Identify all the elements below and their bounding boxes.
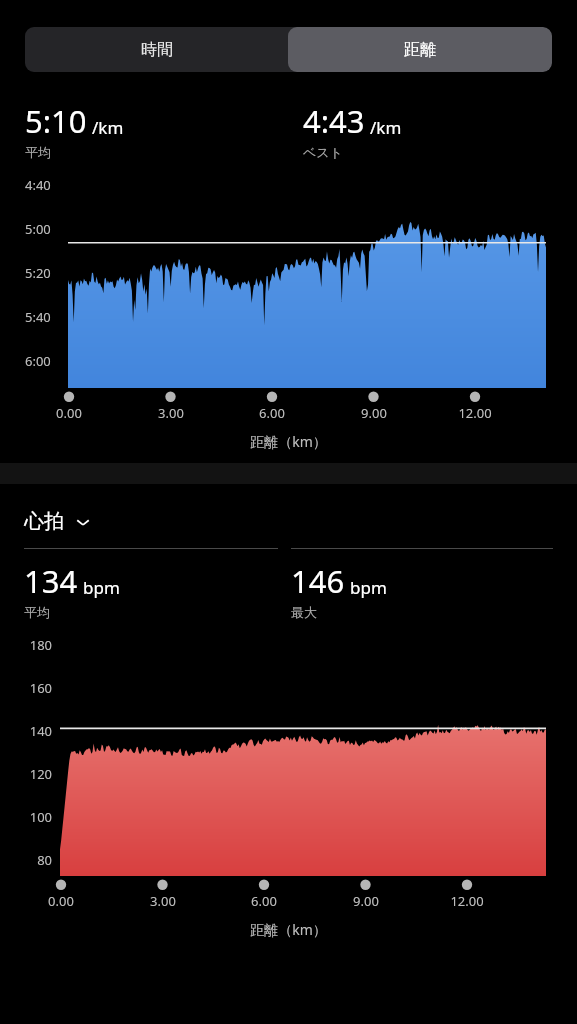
staticText: 134 <box>24 560 78 602</box>
staticText: 最大 <box>291 604 317 620</box>
staticText: 時間 <box>141 40 173 60</box>
other: Expand heart rate <box>74 513 92 531</box>
staticText: 3.00 <box>133 892 193 910</box>
staticText: 距離（km） <box>0 432 577 451</box>
staticText: 距離（km） <box>0 920 577 939</box>
staticText: 80 <box>18 851 52 869</box>
staticText: 146 <box>291 560 345 602</box>
staticText: 5:40 <box>25 308 51 326</box>
staticText: bpm <box>83 576 120 599</box>
staticText: 心拍 <box>24 509 64 534</box>
staticText: 160 <box>18 679 52 697</box>
staticText: 3.00 <box>141 404 201 422</box>
staticText: ベスト <box>303 144 343 160</box>
staticText: 0.00 <box>39 404 99 422</box>
staticText: 平均 <box>24 604 50 620</box>
button[interactable]: 距離 <box>288 27 552 72</box>
staticText: 12.00 <box>445 404 505 422</box>
staticText: 180 <box>18 636 52 654</box>
staticText: 100 <box>18 808 52 826</box>
staticText: 140 <box>18 722 52 740</box>
staticText: 4:43 <box>303 100 365 142</box>
button[interactable]: 時間 <box>25 27 288 72</box>
staticText: /km <box>92 116 124 139</box>
staticText: 5:10 <box>25 100 87 142</box>
staticText: 9.00 <box>344 404 404 422</box>
staticText: 120 <box>18 765 52 783</box>
staticText: 6:00 <box>25 352 51 370</box>
staticText: 平均 <box>25 144 51 160</box>
staticText: 6.00 <box>234 892 294 910</box>
staticText: 4:40 <box>25 176 51 194</box>
button[interactable]: 心拍 <box>24 509 92 534</box>
staticText: 6.00 <box>242 404 302 422</box>
staticText: bpm <box>350 576 387 599</box>
staticText: /km <box>370 116 402 139</box>
staticText: 12.00 <box>437 892 497 910</box>
staticText: 5:20 <box>25 264 51 282</box>
staticText: 距離 <box>404 40 436 60</box>
staticText: 5:00 <box>25 220 51 238</box>
staticText: 9.00 <box>336 892 396 910</box>
staticText: 0.00 <box>31 892 91 910</box>
